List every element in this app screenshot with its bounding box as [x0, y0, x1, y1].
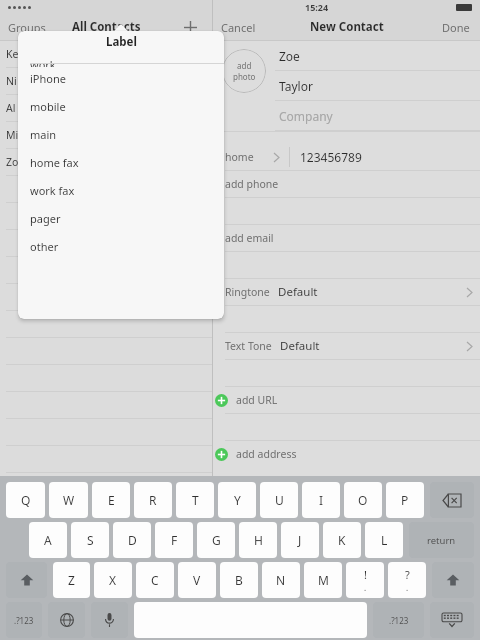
button[interactable]: Zo	[0, 149, 212, 176]
button[interactable]: Text Tone	[213, 333, 480, 359]
button[interactable]: C	[136, 562, 174, 598]
button[interactable]: add address	[213, 441, 480, 467]
staticText: 15:24	[305, 1, 329, 13]
staticText: .?123	[14, 615, 34, 626]
button[interactable]: return	[409, 522, 474, 558]
staticText: X	[109, 572, 117, 588]
button[interactable]: Taylor	[275, 71, 480, 101]
button[interactable]	[0, 203, 212, 230]
button[interactable]: add email	[213, 225, 480, 251]
button[interactable]: R	[134, 482, 172, 518]
staticText: New Contact	[310, 19, 384, 35]
button[interactable]: Dictation	[91, 602, 128, 638]
button[interactable]: add URL	[213, 387, 480, 413]
button[interactable]	[0, 176, 212, 203]
button[interactable]: O	[344, 482, 382, 518]
button[interactable]: X	[94, 562, 132, 598]
staticText: Text Tone	[225, 339, 272, 353]
button[interactable]: Cancel	[221, 20, 256, 35]
staticText: Al	[6, 101, 16, 115]
staticText: P	[401, 492, 409, 508]
button[interactable]: Mi	[0, 122, 212, 149]
staticText: Zoe	[279, 48, 300, 64]
button[interactable]	[0, 230, 212, 257]
button[interactable]: !	[346, 562, 384, 598]
button[interactable]: E	[92, 482, 130, 518]
button[interactable]: Hide keyboard	[430, 602, 474, 638]
button[interactable]: B	[220, 562, 258, 598]
button[interactable]: Shift	[432, 562, 474, 598]
button[interactable]: mobile	[18, 92, 224, 120]
button[interactable]: M	[304, 562, 342, 598]
staticText: All Contacts	[72, 19, 141, 35]
button[interactable]: Y	[218, 482, 256, 518]
button[interactable]: G	[197, 522, 235, 558]
button[interactable]: Shift	[6, 562, 47, 598]
button[interactable]: iPhone	[18, 64, 224, 92]
button[interactable]: Ringtone	[213, 279, 480, 305]
button[interactable]: .?123	[373, 602, 424, 638]
button[interactable]: Language	[48, 602, 85, 638]
staticText: .?123	[389, 615, 409, 626]
button[interactable]: A	[29, 522, 67, 558]
button[interactable]: Q	[6, 482, 45, 518]
button[interactable]: T	[176, 482, 214, 518]
staticText: H	[254, 532, 263, 548]
button[interactable]: ?	[388, 562, 426, 598]
button[interactable]	[430, 482, 474, 518]
staticText: S	[87, 532, 94, 548]
staticText: other	[30, 239, 59, 254]
button[interactable]: Ke	[0, 41, 212, 68]
button[interactable]: add phone	[213, 171, 480, 197]
button[interactable]: Done	[442, 20, 470, 35]
button[interactable]: P	[386, 482, 424, 518]
staticText: Default	[278, 284, 318, 300]
button[interactable]	[0, 257, 212, 284]
button[interactable]: K	[323, 522, 361, 558]
button[interactable]: J	[281, 522, 319, 558]
staticText: iPhone	[30, 71, 66, 86]
button[interactable]: Al	[0, 95, 212, 122]
button[interactable]	[0, 311, 212, 338]
button[interactable]: home fax	[18, 148, 224, 176]
staticText: U	[275, 492, 284, 508]
button[interactable]: Zoe	[275, 41, 480, 71]
button[interactable]: main	[18, 120, 224, 148]
button[interactable]: N	[262, 562, 300, 598]
staticText: V	[193, 572, 201, 588]
button[interactable]: I	[302, 482, 340, 518]
button[interactable]: D	[113, 522, 151, 558]
staticText: !	[364, 567, 367, 582]
button[interactable]: H	[239, 522, 277, 558]
staticText: home	[225, 150, 254, 164]
button[interactable]: W	[49, 482, 88, 518]
button[interactable]: U	[260, 482, 298, 518]
button[interactable]: Company	[275, 101, 480, 131]
staticText: ?	[405, 567, 410, 582]
button[interactable]: V	[178, 562, 216, 598]
staticText: return	[427, 534, 456, 547]
button[interactable]: Add contact	[180, 17, 200, 37]
button[interactable]: work fax	[18, 176, 224, 204]
button[interactable]	[0, 284, 212, 311]
button[interactable]: S	[71, 522, 109, 558]
button[interactable]: L	[365, 522, 403, 558]
button[interactable]: F	[155, 522, 193, 558]
staticText: Ke	[6, 47, 19, 61]
button[interactable]: .?123	[6, 602, 42, 638]
button[interactable]: pager	[18, 204, 224, 232]
button[interactable]: add	[222, 49, 266, 93]
button[interactable]: home	[213, 144, 480, 170]
button[interactable]: Ni	[0, 68, 212, 95]
button[interactable]: Groups	[8, 20, 46, 35]
button[interactable]: other	[18, 232, 224, 260]
button[interactable]: Z	[53, 562, 90, 598]
staticText: Z	[68, 572, 75, 588]
